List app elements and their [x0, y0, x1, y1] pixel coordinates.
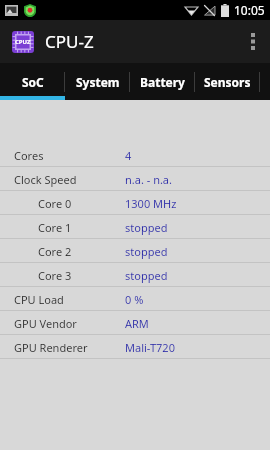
staticText: Battery: [140, 74, 185, 90]
staticText: 1300 MHz: [125, 196, 177, 211]
button[interactable]: Battery: [130, 63, 195, 100]
staticText: Core 2: [38, 244, 72, 259]
button[interactable]: Clock Speed: [0, 167, 270, 191]
staticText: Cores: [14, 148, 44, 163]
staticText: ARM: [125, 316, 149, 331]
staticText: Core 3: [38, 268, 72, 283]
staticText: Clock Speed: [14, 172, 77, 187]
button[interactable]: SoC: [0, 63, 65, 100]
staticText: CPU-Z: [45, 30, 94, 53]
button[interactable]: Core 3: [0, 263, 270, 287]
staticText: CPUZ: [15, 38, 31, 46]
staticText: System: [76, 74, 120, 90]
staticText: GPU Renderer: [14, 340, 88, 355]
button[interactable]: System: [65, 63, 130, 100]
staticText: SoC: [22, 74, 44, 90]
button[interactable]: Sensors: [195, 63, 260, 100]
button[interactable]: Cores: [0, 143, 270, 167]
staticText: 4: [125, 148, 132, 163]
staticText: stopped: [125, 244, 168, 259]
staticText: Core 1: [38, 220, 72, 235]
staticText: stopped: [125, 268, 168, 283]
button[interactable]: Core 0: [0, 191, 270, 215]
staticText: n.a. - n.a.: [125, 172, 172, 187]
staticText: 0 %: [125, 292, 144, 307]
button[interactable]: CPU Load: [0, 287, 270, 311]
button[interactable]: Core 1: [0, 215, 270, 239]
staticText: CPU Load: [14, 292, 64, 307]
button[interactable]: More options: [236, 20, 270, 63]
staticText: Mali-T720: [125, 340, 175, 355]
staticText: stopped: [125, 220, 168, 235]
staticText: Core 0: [38, 196, 72, 211]
staticText: 10:05: [234, 2, 265, 18]
staticText: GPU Vendor: [14, 316, 77, 331]
button[interactable]: GPU Renderer: [0, 335, 270, 359]
staticText: Sensors: [204, 74, 251, 90]
button[interactable]: GPU Vendor: [0, 311, 270, 335]
button[interactable]: Core 2: [0, 239, 270, 263]
